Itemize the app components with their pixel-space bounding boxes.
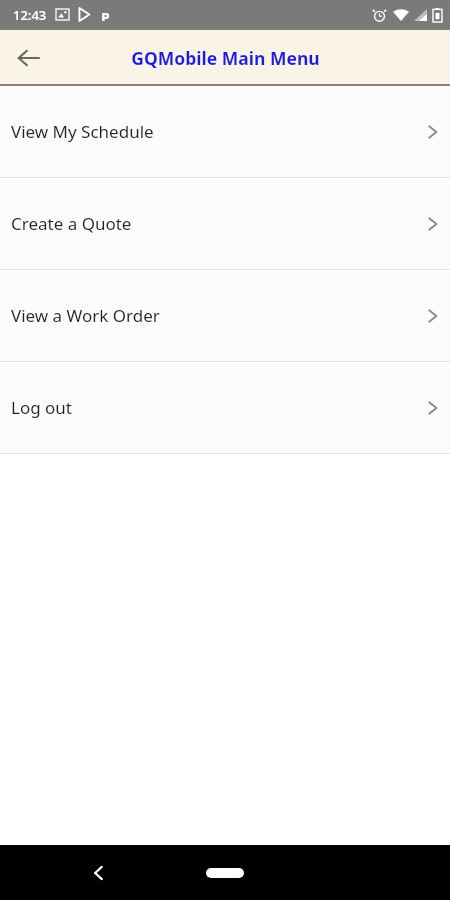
button[interactable]: Create a Quote (0, 178, 450, 269)
button[interactable]: Log out (0, 362, 450, 453)
staticText: View My Schedule (11, 120, 427, 143)
staticText: P (101, 8, 110, 21)
staticText: 12:43 (13, 6, 47, 24)
button[interactable]: View My Schedule (0, 86, 450, 177)
staticText: Create a Quote (11, 212, 427, 235)
button[interactable]: Home (195, 860, 255, 886)
button[interactable]: View a Work Order (0, 270, 450, 361)
staticText: Log out (11, 396, 427, 419)
staticText: View a Work Order (11, 304, 427, 327)
staticText: GQMobile Main Menu (131, 46, 320, 70)
button[interactable]: Back (78, 853, 118, 893)
button[interactable]: Back (8, 38, 48, 78)
